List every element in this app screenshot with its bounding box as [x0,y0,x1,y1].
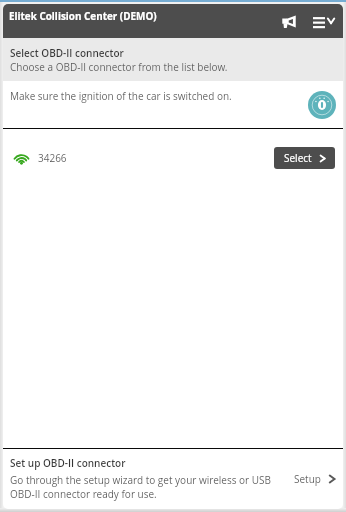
button[interactable]: Set up OBD-II connector [3,449,343,509]
staticText: 34266 [38,151,67,165]
staticText: Go through the setup wizard to get your … [10,473,284,501]
staticText: Select [284,151,312,165]
staticText: Setup [294,472,321,486]
button[interactable]: 34266 [3,129,343,186]
staticText: Make sure the ignition of the car is swi… [10,89,232,103]
staticText: Set up OBD-II connector [10,456,126,470]
button[interactable]: Select [274,147,335,169]
button[interactable]: Announcements [277,9,301,33]
button[interactable]: Setup [294,472,336,486]
staticText: Choose a OBD-II connector from the list … [10,60,228,74]
staticText: Elitek Collision Center (DEMO) [9,9,157,22]
staticText: Select OBD-II connector [10,46,124,60]
button[interactable]: Menu [311,8,337,34]
